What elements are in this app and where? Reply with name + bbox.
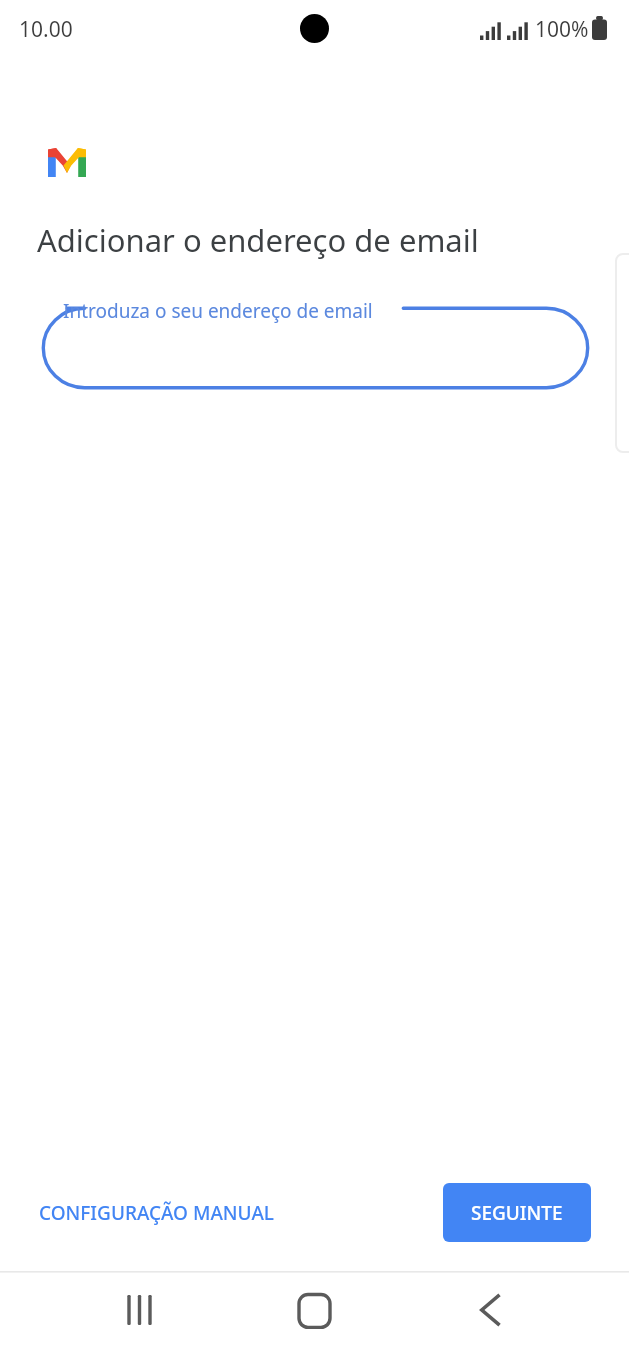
button[interactable] [42,307,589,389]
staticText: Adicionar o endereço de email [37,219,479,261]
staticText: CONFIGURAÇÃO MANUAL [39,1200,275,1226]
button[interactable]: CONFIGURAÇÃO MANUAL [20,1188,330,1238]
staticText: Introduza o seu endereço de email [63,298,373,324]
staticText: SEGUINTE [471,1200,563,1226]
button[interactable]: Recent apps [97,1280,182,1340]
button[interactable]: SEGUINTE [443,1183,591,1242]
staticText: 100% [535,15,589,44]
button[interactable]: Home [272,1280,357,1340]
button[interactable]: Back [447,1280,532,1340]
staticText: 10.00 [19,15,73,44]
